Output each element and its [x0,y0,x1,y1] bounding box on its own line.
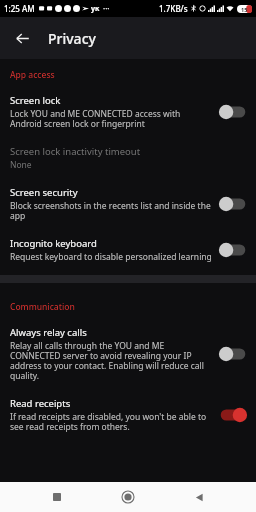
staticText: Relay all calls through the YOU and ME C… [10,340,212,382]
staticText: App access [10,69,55,81]
staticText: Screen lock [10,94,61,107]
staticText: ··· [103,3,110,14]
staticText: If read receipts are disabled, you won't… [10,411,212,433]
staticText: Read receipts [10,397,71,410]
staticText: ук [91,4,100,14]
button[interactable]: Screen lock inactivity timeout [0,136,256,177]
button[interactable]: Home [114,483,142,511]
staticText: 15 [241,6,248,13]
button[interactable]: Read receipts [0,388,256,439]
button[interactable]: Screen security [0,177,256,228]
staticText: Privacy [48,29,96,48]
staticText: 1.7KB/s [159,3,188,14]
button[interactable]: Toggle off [218,345,248,363]
button[interactable]: Back [6,22,38,54]
button[interactable]: Toggle off [218,195,248,213]
staticText: Incognito keyboard [10,237,97,250]
staticText: Request keyboard to disable personalized… [10,251,212,263]
staticText: Always relay calls [10,326,87,339]
button[interactable]: Back [185,483,213,511]
staticText: Lock YOU and ME CONNECTED access with An… [10,108,212,130]
button[interactable]: Toggle off [218,241,248,259]
staticText: Block screenshots in the recents list an… [10,200,212,222]
button[interactable]: Toggle on [218,406,248,424]
button[interactable]: Always relay calls [0,317,256,388]
staticText: 1:25 AM [4,3,35,14]
button[interactable]: Incognito keyboard [0,228,256,269]
staticText: None [10,159,32,171]
button[interactable]: Recents [43,483,71,511]
button[interactable]: Screen lock [0,85,256,136]
staticText: Screen lock inactivity timeout [10,145,141,158]
staticText: Communication [10,301,75,313]
staticText: Screen security [10,186,78,199]
button[interactable]: Toggle off [218,103,248,121]
